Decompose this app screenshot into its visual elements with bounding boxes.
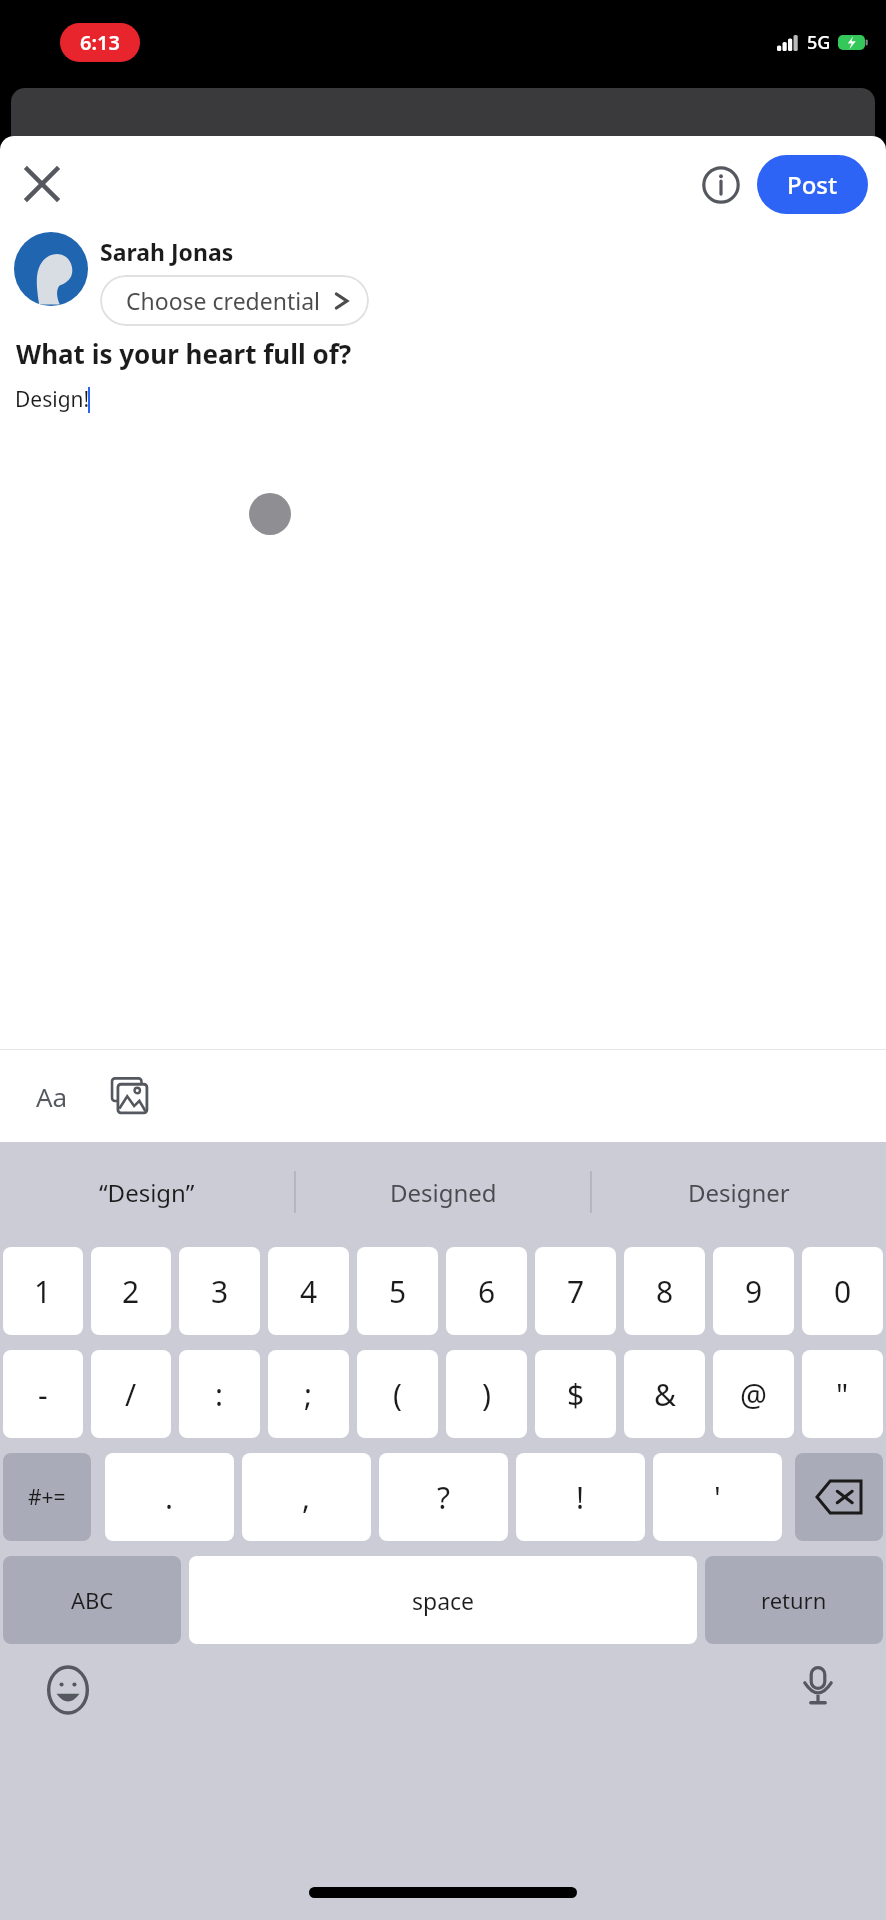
staticText: Design!	[15, 385, 90, 414]
button[interactable]: 4	[268, 1247, 349, 1335]
button[interactable]: Aa	[24, 1068, 80, 1124]
button[interactable]: 6	[446, 1247, 527, 1335]
staticText: 9	[745, 1271, 763, 1312]
staticText: Designed	[390, 1176, 497, 1209]
button[interactable]: Emoji	[40, 1662, 96, 1718]
staticText: 8	[656, 1271, 674, 1312]
staticText: #+=	[28, 1483, 66, 1512]
button[interactable]: Choose credential	[100, 275, 369, 326]
button[interactable]: Post	[757, 155, 868, 214]
button[interactable]: “Design”	[0, 1142, 294, 1242]
button[interactable]: ,	[242, 1453, 371, 1541]
button[interactable]: 5	[357, 1247, 438, 1335]
button[interactable]: space	[189, 1556, 697, 1644]
button[interactable]: 3	[179, 1247, 260, 1335]
staticText: Aa	[36, 1079, 68, 1114]
staticText: 5G	[807, 30, 831, 55]
staticText: !	[576, 1477, 585, 1518]
staticText: ?	[437, 1477, 451, 1518]
staticText: 5	[389, 1271, 407, 1312]
button[interactable]: 8	[624, 1247, 705, 1335]
button[interactable]: ?	[379, 1453, 508, 1541]
button[interactable]: 9	[713, 1247, 794, 1335]
staticText: Designer	[688, 1176, 790, 1209]
button[interactable]: $	[535, 1350, 616, 1438]
staticText: .	[165, 1477, 174, 1518]
staticText: ABC	[71, 1585, 114, 1615]
button[interactable]: Delete	[795, 1453, 883, 1541]
button[interactable]: /	[91, 1350, 171, 1438]
button[interactable]: '	[653, 1453, 782, 1541]
button[interactable]: return	[705, 1556, 883, 1644]
button[interactable]: Designed	[296, 1142, 590, 1242]
staticText: 6	[478, 1271, 496, 1312]
button[interactable]	[14, 232, 88, 306]
staticText: 2	[122, 1271, 140, 1312]
staticText: $	[567, 1374, 585, 1415]
button[interactable]: (	[357, 1350, 438, 1438]
staticText: (	[393, 1374, 402, 1415]
staticText: :	[215, 1374, 224, 1415]
staticText: 1	[34, 1271, 52, 1312]
staticText: return	[761, 1585, 827, 1615]
button[interactable]: ABC	[3, 1556, 181, 1644]
staticText: ,	[302, 1477, 311, 1518]
button[interactable]: 7	[535, 1247, 616, 1335]
staticText: &	[654, 1374, 676, 1415]
staticText: “Design”	[99, 1176, 195, 1209]
button[interactable]: !	[516, 1453, 645, 1541]
button[interactable]: 1	[3, 1247, 83, 1335]
button[interactable]: .	[105, 1453, 234, 1541]
button[interactable]: :	[179, 1350, 260, 1438]
staticText: 4	[300, 1271, 318, 1312]
staticText: Sarah Jonas	[100, 236, 234, 267]
staticText: -	[38, 1374, 48, 1415]
button[interactable]: Information	[695, 159, 747, 211]
staticText: Post	[787, 168, 838, 201]
staticText: )	[482, 1374, 491, 1415]
button[interactable]: &	[624, 1350, 705, 1438]
staticText: "	[836, 1374, 849, 1415]
button[interactable]: "	[802, 1350, 883, 1438]
staticText: 3	[211, 1271, 229, 1312]
button[interactable]: -	[3, 1350, 83, 1438]
staticText: 0	[834, 1271, 852, 1312]
staticText: Choose credential	[126, 285, 321, 316]
button[interactable]: 2	[91, 1247, 171, 1335]
button[interactable]: Close	[16, 158, 68, 210]
button[interactable]: #+=	[3, 1453, 91, 1541]
staticText: 7	[567, 1271, 585, 1312]
button[interactable]: ;	[268, 1350, 349, 1438]
button[interactable]: @	[713, 1350, 794, 1438]
staticText: @	[740, 1374, 767, 1415]
staticText: 6:13	[80, 29, 120, 56]
button[interactable]: Add photo	[100, 1068, 156, 1124]
staticText: ;	[304, 1374, 313, 1415]
button[interactable]: Designer	[592, 1142, 886, 1242]
button[interactable]: )	[446, 1350, 527, 1438]
button[interactable]: 0	[802, 1247, 883, 1335]
staticText: What is your heart full of?	[16, 336, 352, 371]
button[interactable]: Voice input	[790, 1658, 846, 1714]
staticText: space	[412, 1585, 475, 1616]
staticText: /	[125, 1374, 137, 1415]
staticText: '	[714, 1477, 721, 1518]
